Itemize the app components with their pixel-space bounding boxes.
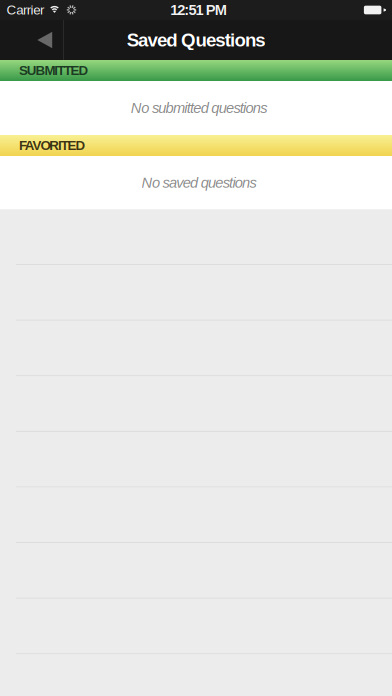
staticText: Saved Questions xyxy=(127,30,265,50)
staticText: Carrier xyxy=(6,3,44,17)
staticText: No saved questions xyxy=(141,175,256,191)
staticText: No submitted questions xyxy=(131,100,267,116)
staticText: 12:51 PM xyxy=(170,2,227,18)
button[interactable]: Back xyxy=(0,20,63,60)
staticText: FAVORITED xyxy=(19,138,85,153)
staticText: SUBMITTED xyxy=(19,63,88,78)
